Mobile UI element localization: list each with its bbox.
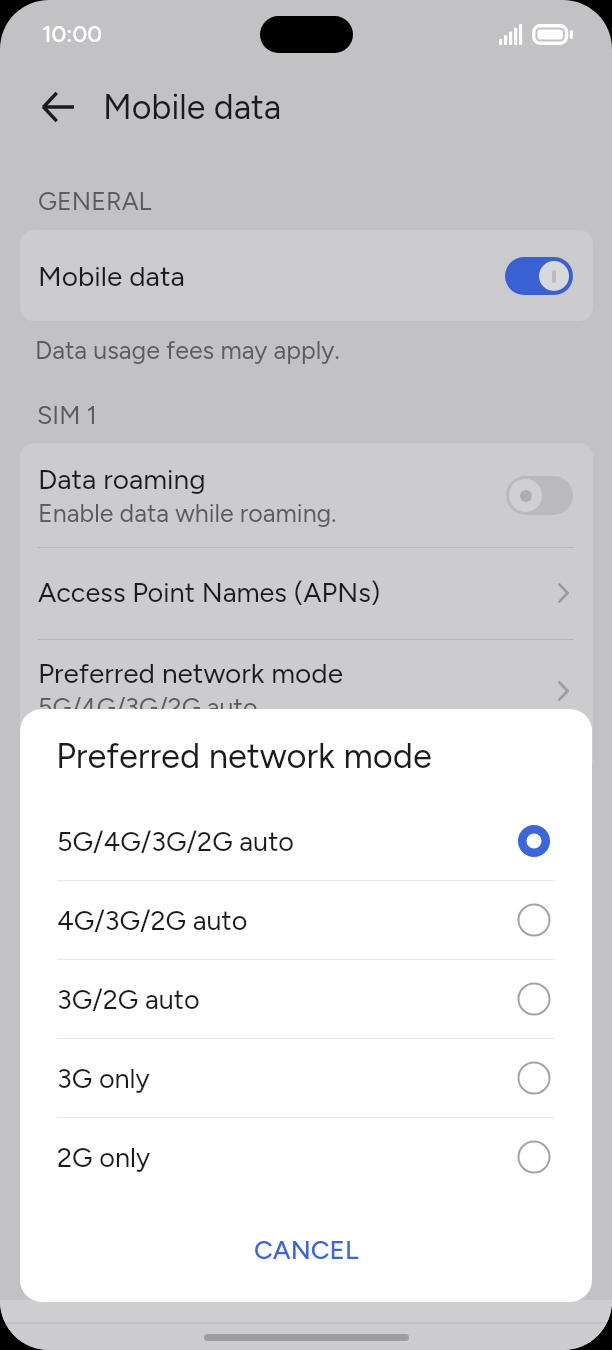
staticText: Access Point Names (APNs): [38, 576, 381, 609]
button[interactable]: Access Point Names (APNs): [20, 548, 593, 639]
staticText: Data usage fees may apply.: [35, 335, 340, 365]
button[interactable]: Preferred network mode: [20, 640, 593, 744]
staticText: 10:00: [42, 20, 103, 48]
staticText: SIM 1: [37, 400, 97, 430]
button[interactable]: 2G only: [20, 1118, 592, 1196]
staticText: 2G only: [57, 1141, 151, 1173]
staticText: 3G only: [57, 1062, 150, 1094]
staticText: Enable data while roaming.: [38, 498, 337, 528]
staticText: Preferred network mode: [38, 656, 344, 690]
staticText: Preferred network mode: [56, 735, 432, 776]
button[interactable]: Back: [29, 78, 87, 136]
button[interactable]: CANCEL: [240, 1226, 373, 1273]
button[interactable]: 5G/4G/3G/2G auto: [20, 802, 592, 880]
staticText: GENERAL: [38, 186, 152, 216]
staticText: 5G/4G/3G/2G auto: [57, 825, 294, 857]
staticText: Data roaming: [38, 462, 206, 496]
staticText: 5G/4G/3G/2G auto: [38, 692, 258, 722]
staticText: Mobile data: [38, 259, 185, 293]
staticText: Mobile data: [103, 87, 282, 128]
button[interactable]: Mobile data: [20, 230, 593, 321]
staticText: CANCEL: [254, 1234, 359, 1265]
button[interactable]: Data roaming: [20, 443, 593, 547]
button[interactable]: [505, 257, 573, 295]
button[interactable]: [506, 476, 573, 515]
button[interactable]: 4G/3G/2G auto: [20, 881, 592, 959]
button[interactable]: 3G/2G auto: [20, 960, 592, 1038]
staticText: 3G/2G auto: [57, 983, 200, 1015]
staticText: 4G/3G/2G auto: [57, 904, 248, 936]
button[interactable]: 3G only: [20, 1039, 592, 1117]
